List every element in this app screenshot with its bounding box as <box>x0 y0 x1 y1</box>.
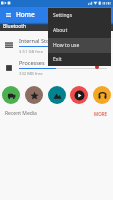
staticText: About <box>53 27 68 34</box>
staticText: How to use <box>53 42 80 49</box>
button[interactable]: Internal Storage <box>0 35 113 56</box>
button[interactable]: Images <box>48 86 66 104</box>
button[interactable]: Videos <box>70 86 88 104</box>
button[interactable]: Audio <box>93 86 111 104</box>
button[interactable] <box>28 22 113 31</box>
staticText: 3.51 GB free <box>19 49 44 55</box>
button[interactable]: Apps <box>2 86 20 104</box>
button[interactable]: Bluetooth <box>0 22 28 31</box>
staticText: Bluetooth <box>3 23 27 30</box>
staticText: Exit <box>53 56 62 63</box>
staticText: 332 MB free <box>19 71 43 77</box>
staticText: Internal Storage <box>19 37 62 44</box>
staticText: Recent Media <box>5 110 37 117</box>
staticText: Settings <box>53 12 73 19</box>
button[interactable]: About <box>48 23 111 38</box>
button[interactable]: How to use <box>48 38 111 53</box>
button[interactable]: Settings <box>48 8 111 23</box>
button[interactable]: Documents <box>25 86 43 104</box>
button[interactable]: Open navigation drawer <box>0 7 16 22</box>
button[interactable]: Processes <box>0 57 113 78</box>
staticText: MORE <box>94 111 108 117</box>
staticText: Processes <box>19 59 45 66</box>
staticText: Home <box>16 10 35 19</box>
button[interactable]: MORE <box>94 111 108 117</box>
button[interactable]: Exit <box>48 53 111 66</box>
